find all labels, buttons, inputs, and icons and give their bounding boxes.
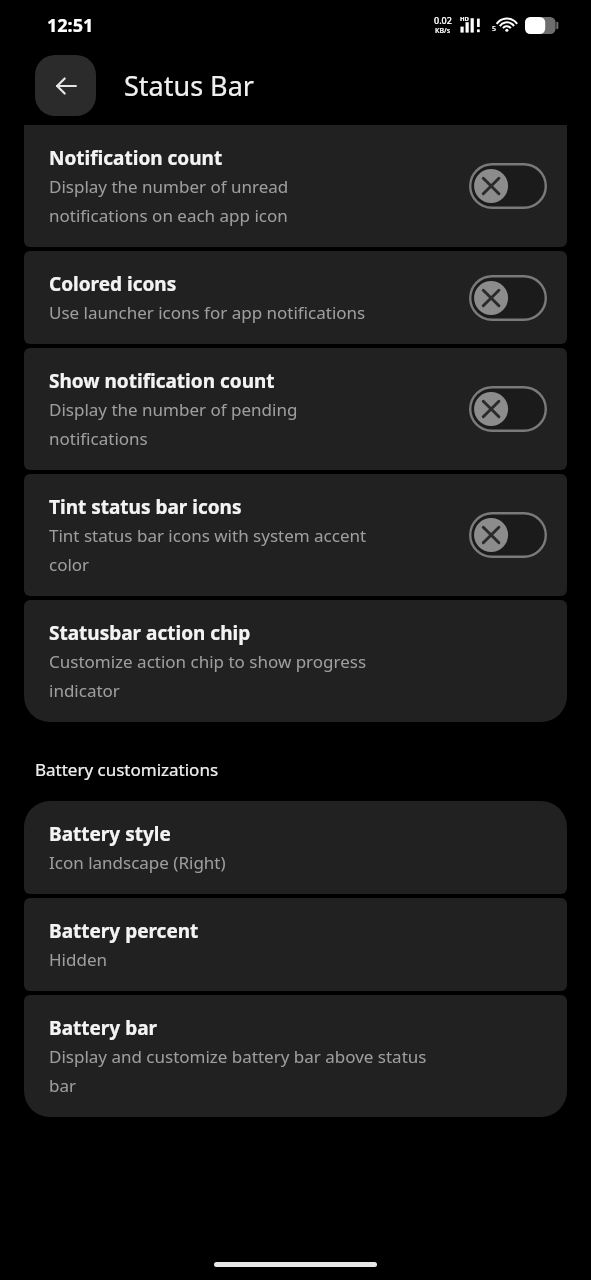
- staticText: Show notification count: [49, 368, 275, 394]
- staticText: Tint status bar icons with system accent…: [49, 524, 367, 576]
- staticText: Hidden: [49, 948, 107, 971]
- staticText: Use launcher icons for app notifications: [49, 301, 366, 324]
- staticText: Display the number of pending notificati…: [49, 398, 298, 450]
- staticText: Statusbar action chip: [49, 620, 251, 646]
- button[interactable]: Tint status bar icons: [24, 474, 567, 596]
- staticText: Icon landscape (Right): [49, 851, 226, 874]
- staticText: Battery percent: [49, 918, 199, 944]
- staticText: Status Bar: [124, 67, 254, 104]
- staticText: Battery customizations: [35, 758, 219, 781]
- button[interactable]: Back: [35, 55, 96, 116]
- button[interactable]: Toggle off: [469, 386, 547, 432]
- staticText: 12:51: [47, 13, 94, 38]
- staticText: 0.02: [434, 14, 452, 26]
- button[interactable]: Statusbar action chip: [24, 600, 567, 722]
- button[interactable]: Notification count: [24, 125, 567, 247]
- button[interactable]: Colored icons: [24, 251, 567, 344]
- staticText: Battery bar: [49, 1015, 158, 1041]
- button[interactable]: Battery style: [24, 801, 567, 894]
- staticText: Customize action chip to show progress i…: [49, 650, 367, 702]
- staticText: Display and customize battery bar above …: [49, 1045, 427, 1097]
- staticText: Display the number of unread notificatio…: [49, 175, 289, 227]
- button[interactable]: Toggle off: [469, 275, 547, 321]
- staticText: Notification count: [49, 145, 223, 171]
- staticText: KB/s: [435, 26, 451, 36]
- button[interactable]: Show notification count: [24, 348, 567, 470]
- staticText: Battery style: [49, 821, 171, 847]
- staticText: HD: [460, 15, 469, 23]
- button[interactable]: Battery bar: [24, 995, 567, 1117]
- button[interactable]: Battery percent: [24, 898, 567, 991]
- button[interactable]: Toggle off: [469, 163, 547, 209]
- staticText: Tint status bar icons: [49, 494, 242, 520]
- staticText: 5: [492, 24, 497, 34]
- button[interactable]: Toggle off: [469, 512, 547, 558]
- staticText: Colored icons: [49, 271, 177, 297]
